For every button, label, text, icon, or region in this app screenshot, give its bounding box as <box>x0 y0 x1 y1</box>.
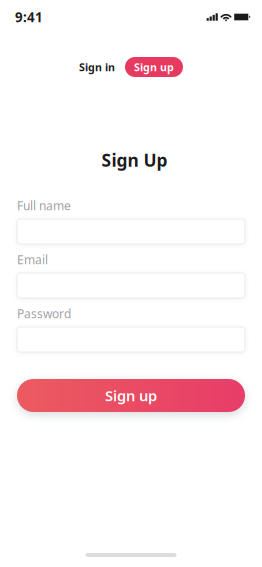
staticText: Sign up <box>134 60 174 74</box>
button[interactable]: Sign in <box>68 57 115 77</box>
staticText: Sign up <box>105 386 157 405</box>
button[interactable]: Sign up <box>17 379 245 412</box>
staticText: 9:41 <box>15 8 43 26</box>
staticText: Sign Up <box>101 148 167 171</box>
button[interactable]: Sign up <box>125 57 183 77</box>
staticText: Password <box>17 305 71 321</box>
staticText: Email <box>17 251 48 267</box>
staticText: Full name <box>17 197 71 213</box>
staticText: Sign in <box>79 60 115 74</box>
